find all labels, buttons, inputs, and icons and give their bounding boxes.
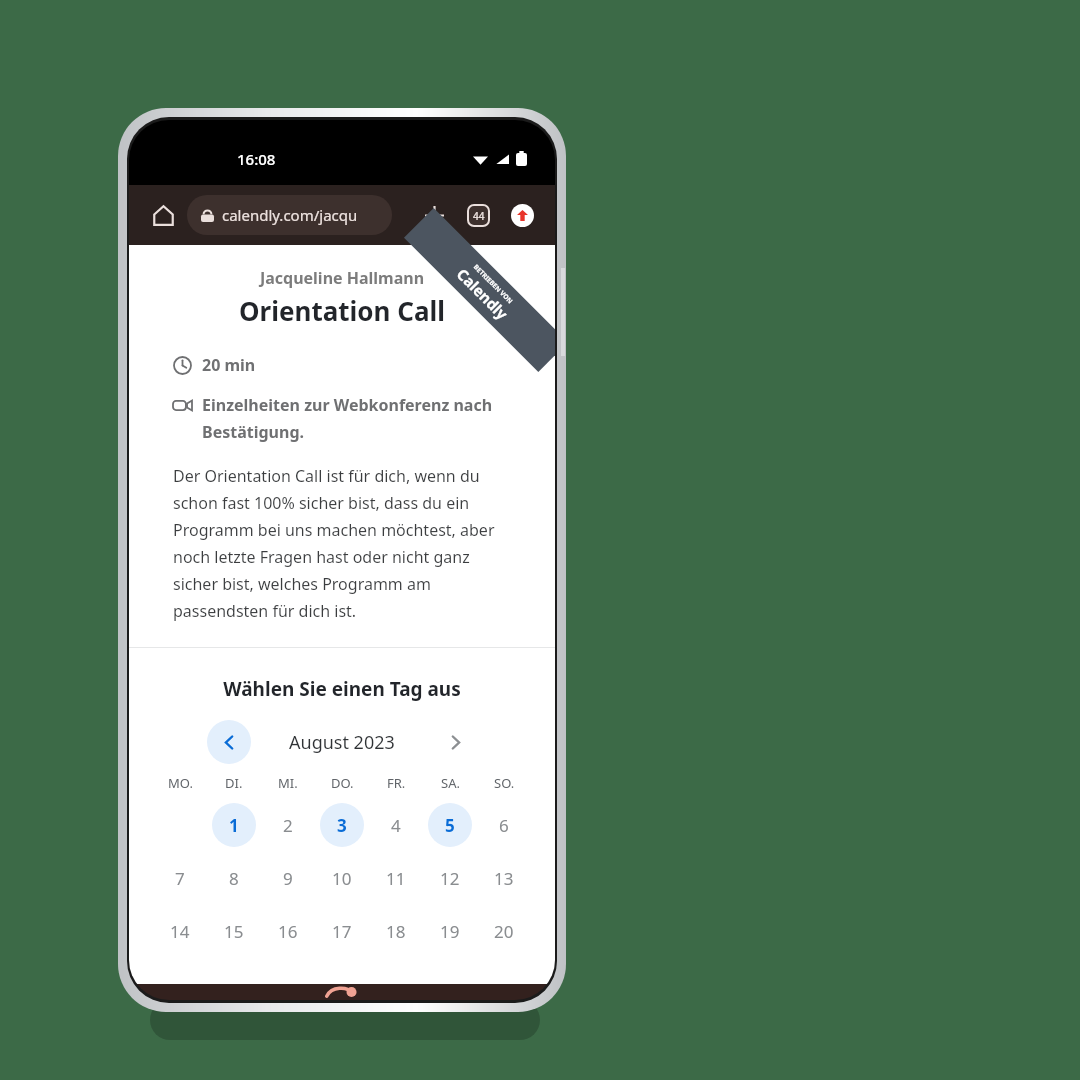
staticText: Der Orientation Call ist für dich, wenn … [173,465,515,621]
button[interactable]: calendly.com/jacqu [187,195,392,235]
staticText: 16:08 [237,149,276,169]
button[interactable]: 18 [374,909,418,953]
staticText: MO. [168,774,193,792]
staticText: 44 [473,209,485,223]
staticText: 5 [445,814,455,837]
button[interactable]: Extensions [503,196,541,234]
staticText: 15 [224,920,244,943]
button[interactable]: 2 [266,803,310,847]
button[interactable]: 20 [482,909,526,953]
staticText: SO. [494,774,515,792]
staticText: 8 [229,867,239,890]
staticText: 14 [170,920,190,943]
staticText: 20 [494,920,514,943]
staticText: 10 [332,867,352,890]
staticText: 9 [283,867,293,890]
staticText: Einzelheiten zur Webkonferenz nach Bestä… [202,394,513,443]
button[interactable]: 1 [212,803,256,847]
staticText: 19 [440,920,460,943]
button[interactable]: 13 [482,856,526,900]
staticText: 1 [229,814,239,837]
staticText: BETRIEBEN VON [472,262,515,305]
staticText: 16 [278,920,298,943]
staticText: Calendly [453,264,513,324]
staticText: 18 [386,920,406,943]
button[interactable]: New tab [415,196,453,234]
button[interactable]: 17 [320,909,364,953]
staticText: DI. [225,774,243,792]
button[interactable]: 8 [212,856,256,900]
staticText: 11 [386,867,406,890]
button[interactable]: 14 [158,909,202,953]
staticText: SA. [441,774,460,792]
staticText: 12 [440,867,460,890]
button[interactable]: 6 [482,803,526,847]
button[interactable]: 19 [428,909,472,953]
staticText: 4 [391,814,401,837]
staticText: 7 [175,867,185,890]
button[interactable]: Home [143,195,183,235]
staticText: 3 [337,814,347,837]
button[interactable]: Next month [433,720,477,764]
button[interactable]: 10 [320,856,364,900]
staticText: FR. [387,774,406,792]
staticText: MI. [278,774,298,792]
button[interactable]: 11 [374,856,418,900]
button[interactable]: 15 [212,909,256,953]
button[interactable]: 7 [158,856,202,900]
staticText: 17 [332,920,352,943]
staticText: August 2023 [289,730,395,755]
button[interactable]: Previous month [207,720,251,764]
staticText: Wählen Sie einen Tag aus [129,676,555,702]
button[interactable]: BETRIEBEN VON [404,208,555,372]
staticText: calendly.com/jacqu [222,205,358,225]
staticText: DO. [331,774,354,792]
button[interactable]: 4 [374,803,418,847]
button[interactable]: 3 [320,803,364,847]
staticText: 13 [494,867,514,890]
staticText: Orientation Call [129,293,555,328]
staticText: 20 min [202,354,256,376]
staticText: 6 [499,814,509,837]
button[interactable]: 12 [428,856,472,900]
button[interactable]: 5 [428,803,472,847]
button[interactable]: Tabs: 44 [459,196,497,234]
staticText: 2 [283,814,293,837]
button[interactable]: 16 [266,909,310,953]
button[interactable]: 9 [266,856,310,900]
staticText: Jacqueline Hallmann [129,267,555,289]
